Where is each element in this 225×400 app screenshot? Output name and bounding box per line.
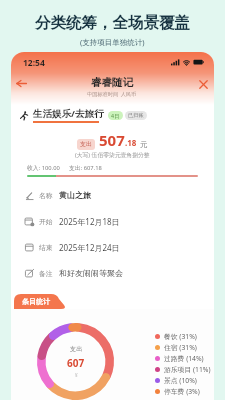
staticText: 2025年12月18日: [59, 216, 120, 227]
staticText: 生活娱乐/去旅行: [33, 107, 104, 120]
button[interactable]: 景点 (10%): [155, 375, 197, 386]
button[interactable]: Close: [192, 73, 214, 100]
staticText: 过路费 (14%): [164, 354, 204, 363]
staticText: 收入: 100.00: [27, 164, 60, 172]
button[interactable]: 条目统计: [14, 294, 67, 309]
button[interactable]: 生活娱乐/去旅行: [20, 107, 205, 123]
staticText: 元: [140, 140, 148, 149]
button[interactable]: 开始: [25, 208, 205, 234]
button[interactable]: 餐饮 (31%): [155, 331, 197, 342]
staticText: 和好友闹闹等聚会: [59, 268, 123, 278]
button[interactable]: 住宿 (31%): [155, 342, 197, 353]
staticText: 分类统筹，全场景覆盖: [35, 13, 190, 33]
staticText: 游乐项目 (11%): [164, 365, 211, 374]
button[interactable]: 结束: [25, 234, 205, 260]
staticText: 景点 (10%): [164, 376, 197, 385]
staticText: 507: [99, 130, 125, 150]
staticText: 餐饮 (31%): [164, 332, 197, 341]
staticText: 支出: 607.18: [69, 164, 102, 172]
staticText: 607: [67, 356, 85, 370]
staticText: 已归账: [128, 112, 144, 119]
staticText: 备注: [39, 269, 53, 278]
button[interactable]: 游乐项目 (11%): [155, 364, 211, 375]
staticText: .18: [125, 137, 137, 148]
staticText: 条目统计: [22, 297, 50, 306]
staticText: 4日: [111, 112, 120, 119]
button[interactable]: 备注: [25, 260, 205, 286]
staticText: ¥: [75, 372, 78, 378]
staticText: 开始: [39, 217, 53, 226]
button[interactable]: 过路费 (14%): [155, 353, 204, 364]
staticText: 12:54: [23, 57, 45, 69]
staticText: 名称: [39, 191, 53, 200]
staticText: 2025年12月24日: [59, 242, 120, 253]
staticText: 停车费 (3%): [164, 387, 200, 396]
staticText: (支持项目单独统计): [80, 37, 145, 47]
staticText: (大写) 伍佰零柒元壹角捌分整: [75, 151, 150, 159]
button[interactable]: 名称: [25, 182, 205, 208]
staticText: 支出: [70, 345, 83, 353]
staticText: 结束: [39, 243, 53, 252]
button[interactable]: Back: [11, 73, 31, 100]
staticText: 睿睿随记: [91, 76, 133, 89]
staticText: 住宿 (31%): [164, 343, 197, 352]
staticText: 支出: [80, 140, 92, 148]
staticText: 中国标准时间 人民币: [87, 90, 137, 97]
staticText: 黄山之旅: [59, 190, 91, 200]
button[interactable]: 停车费 (3%): [155, 386, 200, 397]
